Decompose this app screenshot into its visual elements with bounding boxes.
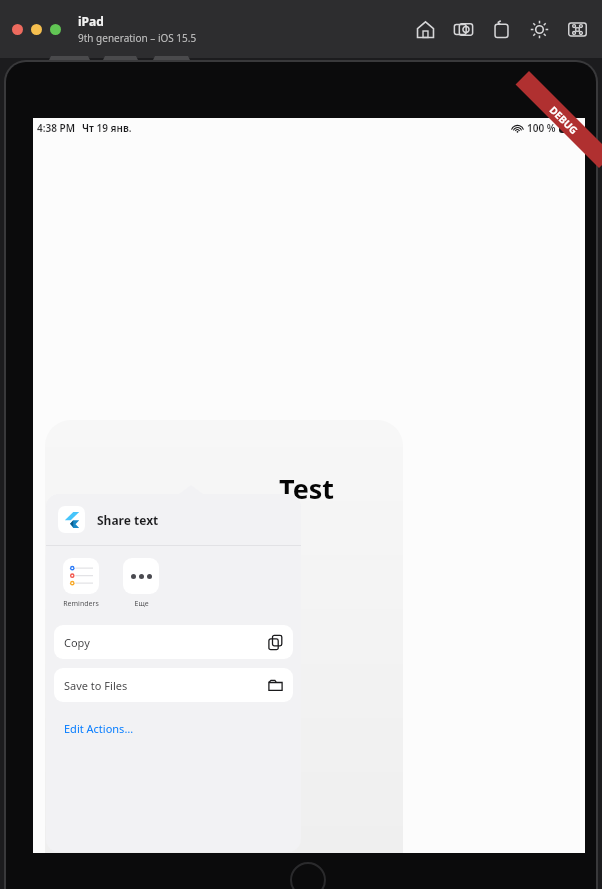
button[interactable]: Rotate (482, 10, 520, 48)
button[interactable] (31, 24, 42, 35)
staticText: 100 % (527, 121, 556, 135)
staticText: 4:38 PM (37, 121, 75, 135)
staticText: Edit Actions… (64, 721, 134, 736)
button[interactable]: More options (558, 10, 596, 48)
button[interactable]: Share text (46, 494, 301, 545)
button[interactable]: Edit Actions… (54, 711, 293, 745)
staticText: Test (279, 470, 335, 507)
button[interactable]: Copy (54, 625, 293, 659)
staticText: Share text (97, 512, 159, 528)
button[interactable]: Еще (118, 558, 164, 609)
staticText: Reminders (63, 599, 99, 609)
staticText: 9th generation – iOS 15.5 (78, 31, 197, 45)
button[interactable]: Save to Files (54, 668, 293, 702)
button[interactable]: Home (406, 10, 444, 48)
staticText: Copy (64, 635, 90, 650)
button[interactable] (50, 24, 61, 35)
button[interactable] (12, 24, 23, 35)
staticText: Еще (134, 599, 149, 609)
staticText: iPad (78, 13, 104, 29)
staticText: DEBUG (547, 103, 581, 137)
button[interactable]: Brightness (520, 10, 558, 48)
button[interactable]: Reminders (58, 558, 104, 609)
staticText: Save to Files (64, 678, 128, 693)
staticText: Чт 19 янв. (82, 121, 132, 135)
button[interactable]: Screenshot (444, 10, 482, 48)
